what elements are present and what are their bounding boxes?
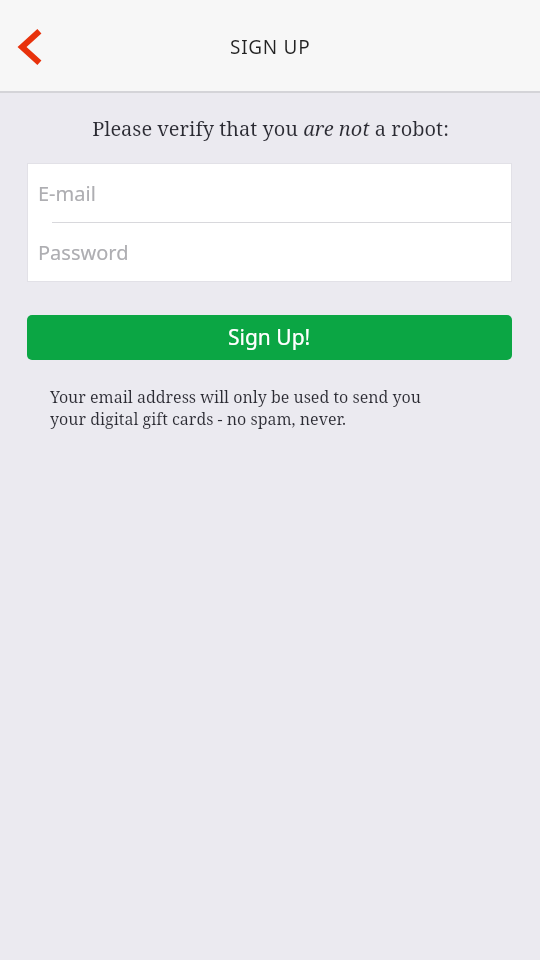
- staticText: Your email address will only be used to …: [50, 386, 421, 430]
- staticText: Password: [38, 239, 129, 266]
- staticText: SIGN UP: [230, 34, 311, 60]
- button[interactable]: Back: [2, 18, 60, 76]
- staticText: Please verify that you are not a robot:: [92, 115, 449, 142]
- staticText: Sign Up!: [228, 323, 311, 352]
- staticText: E-mail: [38, 180, 96, 207]
- button[interactable]: E-mail: [28, 164, 511, 222]
- button[interactable]: Sign Up!: [27, 315, 512, 360]
- button[interactable]: Password: [28, 223, 511, 281]
